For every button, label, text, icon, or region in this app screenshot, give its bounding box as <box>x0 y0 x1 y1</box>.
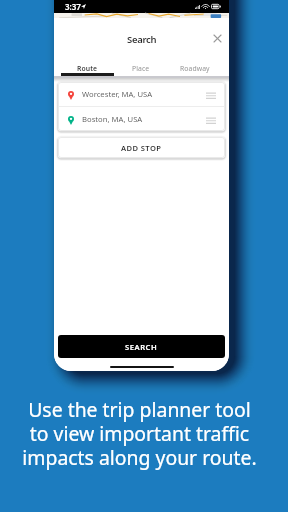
staticText: 3:37 <box>65 1 81 12</box>
other: Reorder <box>206 117 216 125</box>
button[interactable]: SEARCH <box>58 335 225 358</box>
button[interactable]: Place <box>114 50 168 76</box>
button[interactable]: Close <box>209 30 225 46</box>
staticText: Use the trip planner tool to view import… <box>22 396 257 471</box>
staticText: SEARCH <box>125 342 158 352</box>
button[interactable]: Roadway <box>168 50 222 76</box>
button[interactable]: ADD STOP <box>58 137 225 158</box>
staticText: Search <box>127 33 157 46</box>
staticText: Roadway <box>180 64 210 73</box>
staticText: Place <box>132 64 150 73</box>
staticText: ADD STOP <box>121 143 162 153</box>
button[interactable]: Boston, MA, USA <box>58 107 225 131</box>
button[interactable]: Worcester, MA, USA <box>58 82 225 106</box>
staticText: Route <box>77 64 98 73</box>
staticText: Boston, MA, USA <box>82 114 143 124</box>
other: Reorder <box>206 92 216 100</box>
staticText: Worcester, MA, USA <box>82 89 153 99</box>
button[interactable]: Route <box>61 50 114 76</box>
